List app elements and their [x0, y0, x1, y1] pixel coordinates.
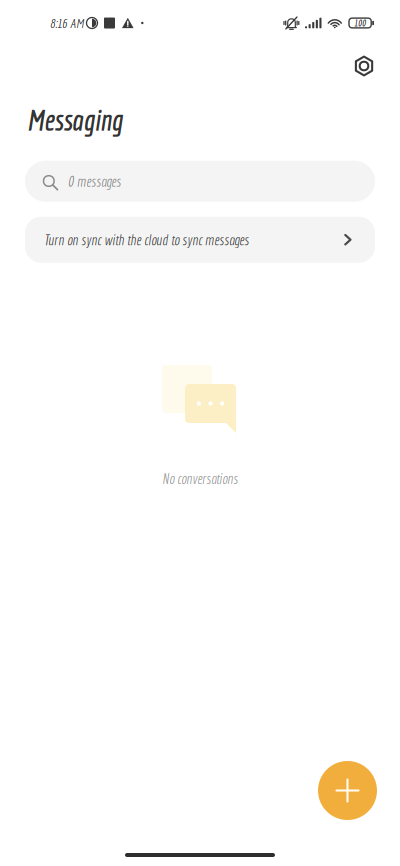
button[interactable]: 0 messages	[25, 161, 375, 202]
staticText: Messaging	[27, 103, 123, 137]
staticText: 0 messages	[68, 173, 121, 190]
staticText: Turn on sync with the cloud to sync mess…	[44, 231, 249, 248]
staticText: 8:16 AM	[50, 15, 84, 31]
button[interactable]: New conversation	[318, 761, 377, 820]
staticText: No conversations	[162, 470, 238, 487]
button[interactable]: Settings	[346, 48, 382, 84]
button[interactable]: Turn on sync with the cloud to sync mess…	[25, 217, 375, 263]
staticText: 100	[354, 18, 366, 28]
